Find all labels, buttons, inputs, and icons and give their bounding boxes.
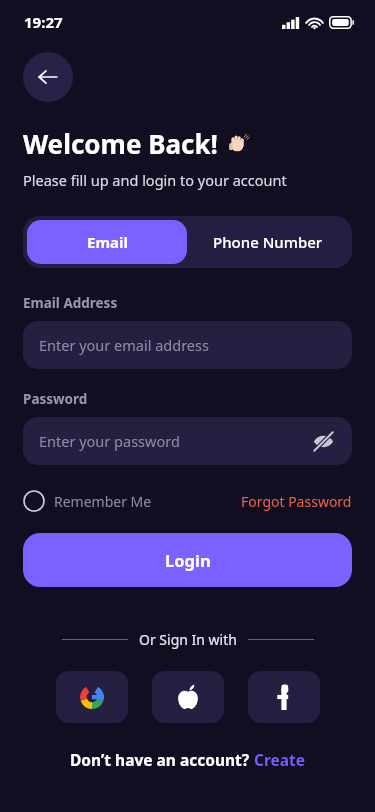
button[interactable]: Login bbox=[23, 533, 352, 587]
button[interactable]: Sign in with Apple bbox=[152, 671, 224, 723]
staticText: 19:27 bbox=[24, 12, 63, 32]
staticText: Forgot Password bbox=[241, 492, 352, 511]
button[interactable]: Sign in with Facebook bbox=[248, 671, 320, 723]
staticText: Create bbox=[254, 749, 306, 770]
staticText: Email bbox=[87, 232, 128, 252]
staticText: Email Address bbox=[23, 294, 118, 312]
button[interactable]: Forgot Password bbox=[241, 492, 352, 511]
staticText: Welcome Back! bbox=[23, 126, 218, 161]
button[interactable]: Remember Me bbox=[23, 490, 152, 512]
button[interactable]: Sign in with Google bbox=[56, 671, 128, 723]
staticText: Don’t have an account? bbox=[70, 749, 254, 770]
button[interactable]: Phone Number bbox=[187, 220, 348, 264]
staticText: Password bbox=[23, 390, 88, 408]
staticText: Or Sign In with bbox=[139, 630, 237, 649]
staticText: Login bbox=[165, 549, 211, 571]
staticText: Remember Me bbox=[54, 492, 152, 511]
button[interactable]: Show password bbox=[310, 428, 336, 454]
staticText: Please fill up and login to your account bbox=[23, 170, 287, 190]
staticText: Enter your email address bbox=[39, 335, 209, 355]
button[interactable]: Enter your email address bbox=[23, 321, 352, 369]
button[interactable]: Email bbox=[27, 220, 187, 264]
button[interactable]: Enter your password bbox=[23, 417, 352, 465]
button[interactable]: Don’t have an account? bbox=[0, 749, 375, 770]
staticText: Enter your password bbox=[39, 431, 180, 451]
staticText: Phone Number bbox=[213, 232, 323, 252]
button[interactable]: Back bbox=[23, 52, 73, 102]
